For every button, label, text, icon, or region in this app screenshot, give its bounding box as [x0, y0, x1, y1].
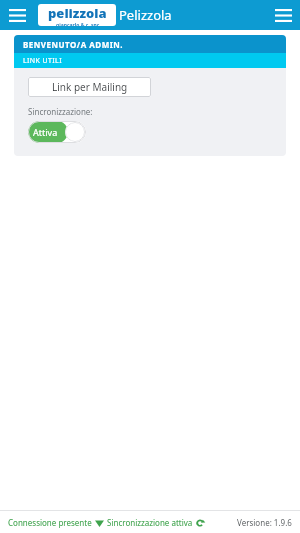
staticText: Connessione presente [8, 517, 92, 528]
staticText: pelizzola [48, 4, 107, 22]
staticText: Versione: 1.9.6 [237, 517, 292, 528]
staticText: BENVENUTO/A ADMIN. [23, 39, 124, 50]
button[interactable]: Attiva [28, 121, 86, 143]
staticText: Attiva [33, 126, 58, 138]
staticText: Sincronizzazione: [28, 106, 93, 117]
button[interactable]: Link per Mailing [28, 77, 151, 97]
staticText: Pelizzola [119, 6, 172, 24]
staticText: LINK UTILI [23, 56, 62, 66]
staticText: Sincronizzazione attiva [107, 517, 193, 528]
staticText: giancarlo & c. snc [56, 22, 100, 26]
button[interactable]: Open navigation menu [0, 0, 34, 30]
staticText: Link per Mailing [52, 80, 128, 94]
button[interactable]: Open options menu [266, 0, 300, 30]
